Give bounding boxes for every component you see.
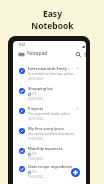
staticText: My first song lyrics bbox=[28, 126, 64, 131]
staticText: Notebook bbox=[31, 20, 74, 32]
staticText: Interview with Emily... bbox=[28, 66, 70, 71]
staticText: 1/3 bbox=[32, 170, 37, 174]
staticText: The project will involve collect bbox=[28, 112, 70, 116]
button[interactable]: Projects bbox=[13, 105, 86, 124]
staticText: 19/01/2024 bbox=[28, 175, 43, 179]
staticText: 1/3 bbox=[32, 152, 37, 156]
button[interactable]: Interview with Emily... bbox=[13, 65, 86, 84]
button[interactable]: Oats recipe ingredients bbox=[13, 163, 86, 182]
staticText: Monthly expenses bbox=[28, 146, 63, 151]
staticText: 19/01/2024 bbox=[28, 157, 43, 161]
staticText: Notepad bbox=[27, 50, 48, 57]
button[interactable]: Search bbox=[75, 51, 82, 58]
staticText: Shopping list bbox=[28, 86, 53, 91]
staticText: To schedule an interview, please bbox=[28, 72, 74, 76]
staticText: 9:41 bbox=[19, 43, 26, 47]
staticText: 22/01/2024 bbox=[28, 77, 43, 81]
button[interactable]: Shopping list bbox=[13, 85, 86, 104]
button[interactable]: Open navigation menu bbox=[18, 51, 25, 58]
button[interactable]: Monthly expenses bbox=[13, 145, 86, 164]
staticText: You are the sunshine that warms bbox=[28, 132, 75, 136]
staticText: 21/01/2024 bbox=[28, 137, 43, 141]
button[interactable]: More options bbox=[82, 51, 86, 58]
staticText: 22/01/2024 bbox=[28, 117, 43, 121]
button[interactable]: My first song lyrics bbox=[13, 125, 86, 144]
staticText: 1/3 bbox=[32, 92, 37, 96]
staticText: Oats recipe ingredients bbox=[28, 164, 73, 169]
staticText: Projects bbox=[28, 106, 44, 111]
staticText: Easy bbox=[43, 8, 62, 20]
button[interactable]: Create new note bbox=[71, 168, 80, 177]
staticText: 22/01/2024 bbox=[28, 97, 43, 101]
